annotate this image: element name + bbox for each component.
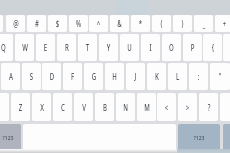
staticText: + [223,18,226,29]
button[interactable]: > [178,93,197,121]
button[interactable]: E [36,34,55,61]
button[interactable]: L [168,63,187,90]
staticText: O [169,42,174,53]
button[interactable]: ^ [89,15,108,32]
staticText: ^ [97,18,100,29]
button[interactable]: F [63,63,82,90]
staticText: & [117,18,122,29]
staticText: % [76,18,81,29]
button[interactable]: ?123 [178,124,220,150]
staticText: # [35,18,39,29]
button[interactable]: P [183,34,202,61]
button[interactable]: Q [0,34,13,61]
staticText: S [30,71,33,82]
button[interactable]: @ [6,15,25,32]
button[interactable]: _ [194,15,213,32]
button[interactable]: H [105,63,124,90]
button[interactable]: J [126,63,145,90]
staticText: U [127,42,132,53]
button[interactable]: $ [48,15,67,32]
button[interactable]: Enter [223,124,230,150]
staticText: * [139,18,142,29]
staticText: G [92,71,96,82]
button[interactable]: % [69,15,88,32]
staticText: H [112,71,117,82]
button[interactable]: X [32,93,51,121]
staticText: ? [207,102,210,113]
staticText: B [103,102,107,113]
staticText: X [40,102,44,113]
button[interactable]: S [22,63,41,90]
button[interactable]: & [110,15,129,32]
button[interactable]: < [157,93,176,121]
button[interactable]: Y [99,34,118,61]
staticText: @ [13,18,19,29]
staticText: J [134,71,137,82]
staticText: A [9,71,13,82]
staticText: $ [56,18,59,29]
button[interactable]: " [210,63,229,90]
button[interactable]: ? [199,93,218,121]
button[interactable]: * [131,15,150,32]
staticText: Z [19,102,22,113]
staticText: F [71,71,74,82]
button[interactable]: Z [11,93,30,121]
staticText: D [50,71,54,82]
button[interactable]: { [203,34,222,61]
staticText: ?123 [2,133,14,141]
button[interactable]: ?123 [0,124,21,150]
button[interactable]: U [120,34,139,61]
button[interactable]: B [95,93,114,121]
staticText: ?123 [193,133,205,141]
staticText: E [44,42,47,53]
staticText: R [65,42,69,53]
staticText: V [82,102,86,113]
button[interactable]: ) [173,15,192,32]
button[interactable]: I [141,34,160,61]
button[interactable]: M [137,93,156,121]
button[interactable] [229,63,230,90]
button[interactable]: W [15,34,34,61]
button[interactable]: ! [0,15,3,32]
staticText: N [123,102,128,113]
button[interactable]: G [84,63,103,90]
staticText: W [22,42,28,53]
button[interactable]: C [53,93,72,121]
staticText: ) [181,18,184,29]
button[interactable]: ( [152,15,171,32]
button[interactable]: A [1,63,20,90]
staticText: ( [160,18,163,29]
button[interactable]: D [42,63,61,90]
staticText: T [86,42,89,53]
staticText: P [191,42,194,53]
staticText: M [144,102,150,113]
staticText: C [61,102,65,113]
staticText: { [211,42,214,53]
button[interactable]: : [189,63,208,90]
button[interactable]: T [78,34,97,61]
button[interactable]: K [147,63,166,90]
staticText: " [218,71,221,82]
staticText: Q [1,42,6,53]
button[interactable]: V [74,93,93,121]
staticText: K [155,71,159,82]
staticText: Y [107,42,110,53]
staticText: < [165,102,168,113]
button[interactable]: + [215,15,230,32]
button[interactable]: R [57,34,76,61]
staticText: I [149,42,152,53]
staticText: L [176,71,179,82]
staticText: > [186,102,189,113]
button[interactable]: N [116,93,135,121]
staticText: : [197,71,200,82]
staticText: _ [202,18,205,29]
button[interactable]: # [27,15,46,32]
button[interactable]: O [162,34,181,61]
